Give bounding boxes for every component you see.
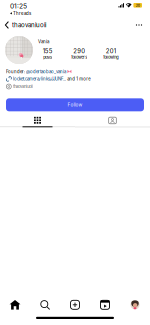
button[interactable]: Follow (6, 98, 144, 111)
button[interactable]: Home (0, 298, 30, 312)
staticText: 01:25 (10, 2, 27, 10)
button[interactable]: thaovaniuoii (12, 21, 46, 29)
button[interactable]: Back (2, 18, 12, 32)
staticText: locket.camera/links/JJUNF... (13, 76, 66, 82)
staticText: 155 (43, 47, 53, 55)
staticText: Vania (38, 39, 49, 44)
staticText: @odertaobao_vania (26, 69, 66, 74)
staticText: thaovaniuoii (13, 84, 33, 89)
button[interactable]: Reels (90, 298, 120, 312)
button[interactable]: Profile photo (0, 36, 33, 64)
button[interactable]: 201 (95, 47, 126, 60)
button[interactable]: locket.camera/links/JJUNF... (6, 76, 90, 82)
button[interactable]: Search (30, 298, 60, 312)
staticText: 201 (106, 47, 116, 55)
staticText: 20 (136, 3, 140, 7)
staticText: followers (71, 55, 87, 60)
button[interactable]: Create (60, 298, 90, 312)
button[interactable]: Profile (120, 298, 150, 312)
staticText: posts (43, 55, 52, 60)
staticText: and 1 more (67, 76, 90, 82)
button[interactable]: 290 (63, 47, 95, 60)
button[interactable]: Posts grid (0, 114, 75, 127)
staticText: Threads (13, 11, 31, 16)
button[interactable]: Tagged posts (75, 114, 150, 127)
staticText: 290 (73, 47, 85, 55)
button[interactable]: 155 (32, 47, 63, 60)
staticText: Founder: (6, 69, 26, 74)
staticText: thaovaniuoii (12, 21, 46, 29)
staticText: Follow (67, 102, 82, 108)
button[interactable]: More options (131, 18, 147, 32)
button[interactable]: thaovaniuoii (6, 84, 33, 89)
staticText: following (103, 55, 118, 60)
